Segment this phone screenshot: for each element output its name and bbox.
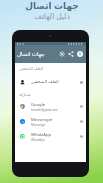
button[interactable]: Info	[75, 48, 84, 60]
button[interactable]: Sync	[57, 48, 66, 60]
staticText: Google	[31, 102, 46, 108]
staticText: دليل الهاتف	[34, 11, 70, 21]
staticText: transfer@gmail.com	[31, 108, 58, 112]
button[interactable]: WhatsApp	[15, 129, 86, 144]
staticText: جهات اتصال	[17, 50, 45, 57]
staticText: الملف الشخصي	[19, 66, 43, 71]
staticText: Messenger	[31, 117, 53, 123]
button[interactable]: Messenger	[15, 114, 86, 129]
staticText: الملف الشخصي	[31, 79, 59, 85]
staticText: WhatsApp	[31, 138, 45, 142]
staticText: WhatsApp	[31, 132, 52, 138]
staticText: مشاركة	[19, 93, 31, 97]
button[interactable]: Share	[66, 48, 75, 60]
button[interactable]: Google	[15, 99, 86, 114]
button[interactable]: الملف الشخصي	[15, 76, 86, 88]
staticText: Messenger	[31, 123, 46, 127]
staticText: جهات اتصال	[25, 0, 79, 11]
